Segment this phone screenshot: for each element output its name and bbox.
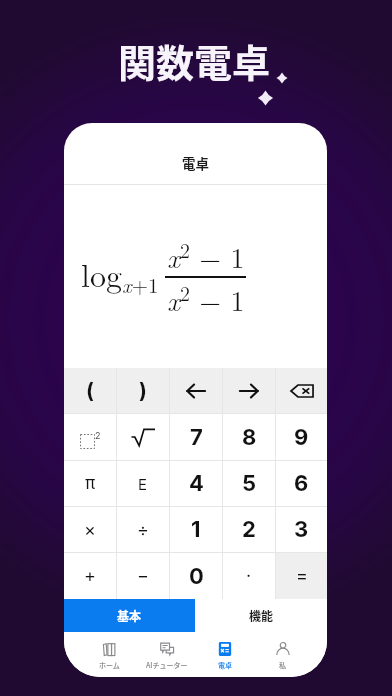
button[interactable]: Backspace (276, 368, 327, 413)
staticText: 関数電卓 (118, 33, 271, 88)
staticText: 2 (95, 430, 101, 441)
button[interactable]: 8 (223, 414, 275, 460)
staticText: 7 (190, 424, 203, 451)
staticText: 9 (294, 424, 309, 451)
button[interactable]: AIチューター (138, 632, 196, 677)
staticText: 4 (189, 470, 204, 497)
staticText: 2 (242, 516, 256, 543)
staticText: 5 (242, 470, 257, 497)
staticText: 8 (242, 424, 257, 451)
staticText: π (85, 473, 96, 494)
button[interactable]: 電卓 (196, 632, 254, 677)
button[interactable]: 7 (170, 414, 222, 460)
button[interactable]: Square (64, 414, 116, 460)
button[interactable]: 私 (254, 632, 311, 677)
button[interactable]: 4 (170, 461, 222, 506)
staticText: 電卓 (218, 660, 232, 670)
staticText: · (246, 565, 252, 587)
button[interactable]: 6 (276, 461, 327, 506)
button[interactable]: ) (117, 368, 169, 413)
button[interactable]: ( (64, 368, 116, 413)
button[interactable]: − (117, 553, 169, 599)
staticText: ( (86, 378, 94, 403)
staticText: + (84, 565, 96, 587)
staticText: logx+1 (81, 251, 159, 299)
button[interactable]: 0 (170, 553, 222, 599)
button[interactable]: 基本 (64, 599, 195, 632)
button[interactable]: Move cursor left (170, 368, 222, 413)
staticText: 6 (294, 470, 309, 497)
staticText: = (296, 565, 308, 587)
button[interactable]: E (117, 461, 169, 506)
button[interactable]: 1 (170, 507, 222, 552)
button[interactable]: π (64, 461, 116, 506)
staticText: ) (139, 378, 147, 403)
staticText: E (138, 475, 148, 493)
staticText: 私 (279, 660, 286, 670)
staticText: AIチューター (146, 660, 188, 670)
staticText: × (84, 519, 96, 541)
button[interactable]: + (64, 553, 116, 599)
button[interactable]: Square root (117, 414, 169, 460)
button[interactable]: 5 (223, 461, 275, 506)
staticText: ÷ (137, 519, 149, 541)
staticText: 0 (189, 563, 204, 590)
staticText: x2 − 1 (167, 278, 245, 319)
staticText: ホーム (99, 660, 120, 670)
button[interactable]: 2 (223, 507, 275, 552)
staticText: x2 − 1 (167, 235, 245, 276)
button[interactable]: 3 (276, 507, 327, 552)
button[interactable]: 機能 (195, 599, 327, 632)
button[interactable]: × (64, 507, 116, 552)
button[interactable]: · (223, 553, 275, 599)
button[interactable]: 9 (276, 414, 327, 460)
staticText: 3 (294, 516, 309, 543)
button[interactable]: Move cursor right (223, 368, 275, 413)
staticText: 機能 (249, 607, 274, 624)
staticText: − (137, 565, 149, 587)
staticText: 電卓 (182, 153, 209, 173)
button[interactable]: ホーム (80, 632, 138, 677)
staticText: 基本 (117, 607, 142, 624)
staticText: 1 (191, 516, 201, 543)
button[interactable]: ÷ (117, 507, 169, 552)
button[interactable]: = (276, 553, 327, 599)
